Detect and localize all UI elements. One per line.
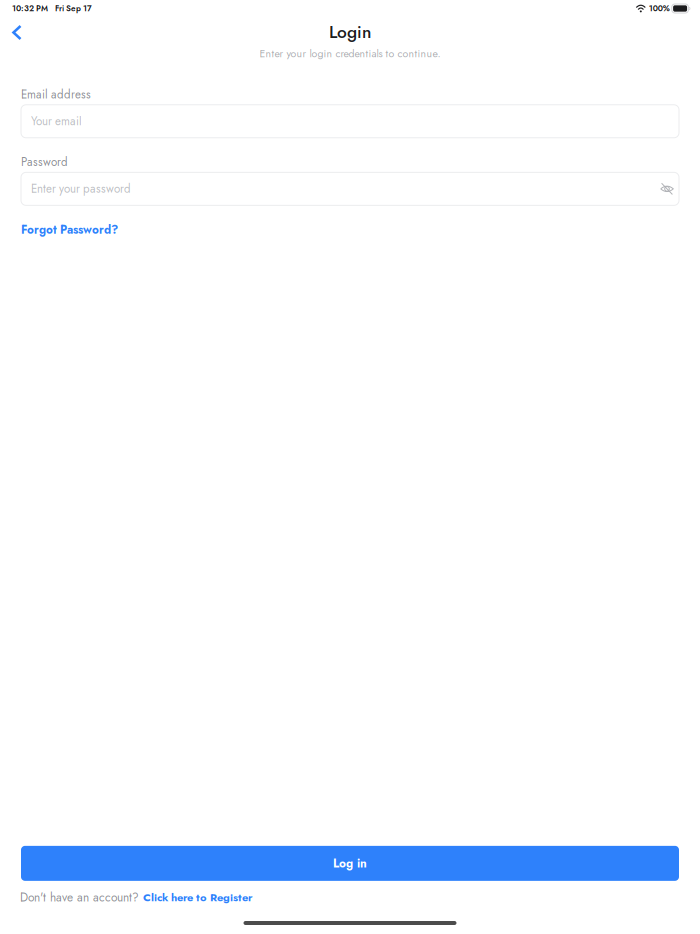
staticText: Enter your login credentials to continue… bbox=[259, 46, 440, 61]
button[interactable]: Click here to Register bbox=[143, 889, 253, 905]
staticText: Email address bbox=[21, 86, 91, 103]
staticText: Fri Sep 17 bbox=[55, 3, 92, 14]
button[interactable]: Show password bbox=[660, 183, 674, 195]
staticText: Login bbox=[329, 19, 371, 44]
staticText: Password bbox=[21, 154, 68, 170]
button[interactable]: Forgot Password? bbox=[21, 221, 679, 238]
staticText: Log in bbox=[333, 855, 367, 872]
button[interactable]: Back bbox=[0, 20, 32, 45]
button[interactable]: Log in bbox=[21, 846, 679, 881]
staticText: 10:32 PM bbox=[12, 3, 48, 14]
staticText: Don't have an account? bbox=[20, 889, 143, 906]
staticText: Forgot Password? bbox=[21, 221, 118, 238]
staticText: Enter your password bbox=[31, 181, 131, 197]
staticText: Your email bbox=[31, 113, 82, 130]
staticText: Click here to Register bbox=[143, 889, 253, 905]
staticText: 100% bbox=[649, 3, 670, 14]
